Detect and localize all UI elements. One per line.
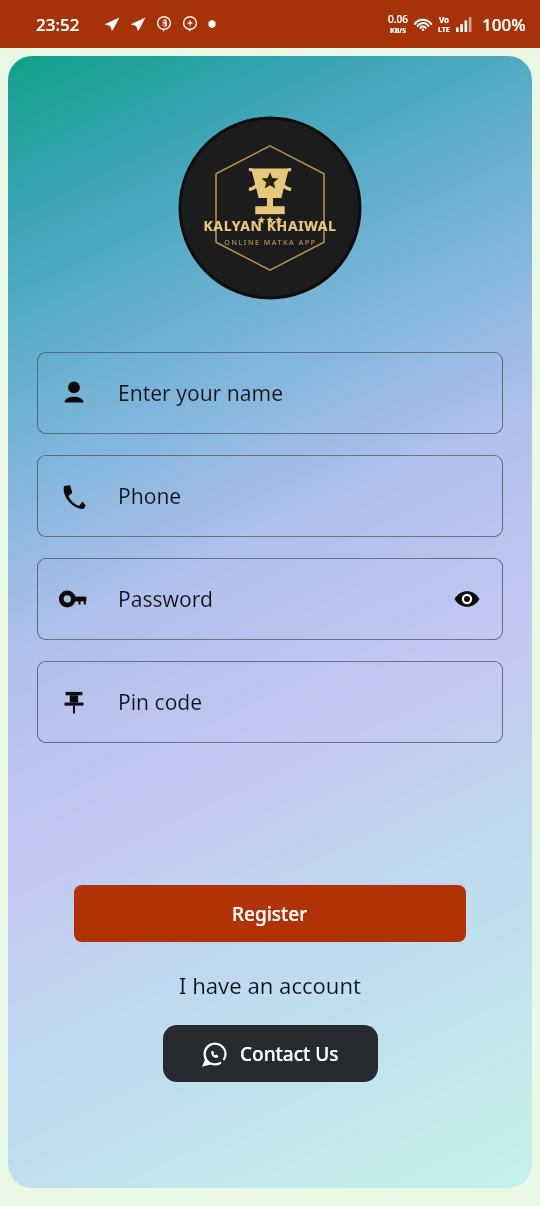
staticText: 0.06 [388,12,408,26]
staticText: 23:52 [36,13,80,36]
staticText: Contact Us [240,1041,339,1067]
button[interactable]: Password [37,558,503,640]
button[interactable]: Register [74,885,466,942]
button[interactable]: Show password [443,575,491,623]
button[interactable]: Phone [37,455,503,537]
staticText: KB/S [390,26,407,36]
button[interactable]: I have an account [165,966,375,1004]
staticText: Phone [118,482,182,511]
staticText: Password [118,585,213,614]
staticText: Vo [439,14,450,25]
staticText: Register [232,901,308,927]
staticText: ONLINE MATKA APP [224,238,317,248]
staticText: Enter your name [118,379,283,408]
button[interactable]: Enter your name [37,352,503,434]
staticText: LTE [438,25,450,35]
button[interactable]: Pin code [37,661,503,743]
staticText: 100% [482,13,526,36]
staticText: KALYAN KHAIWAL [203,216,337,235]
staticText: Pin code [118,688,203,717]
button[interactable]: Contact Us [163,1025,378,1082]
staticText: I have an account [179,970,361,1000]
